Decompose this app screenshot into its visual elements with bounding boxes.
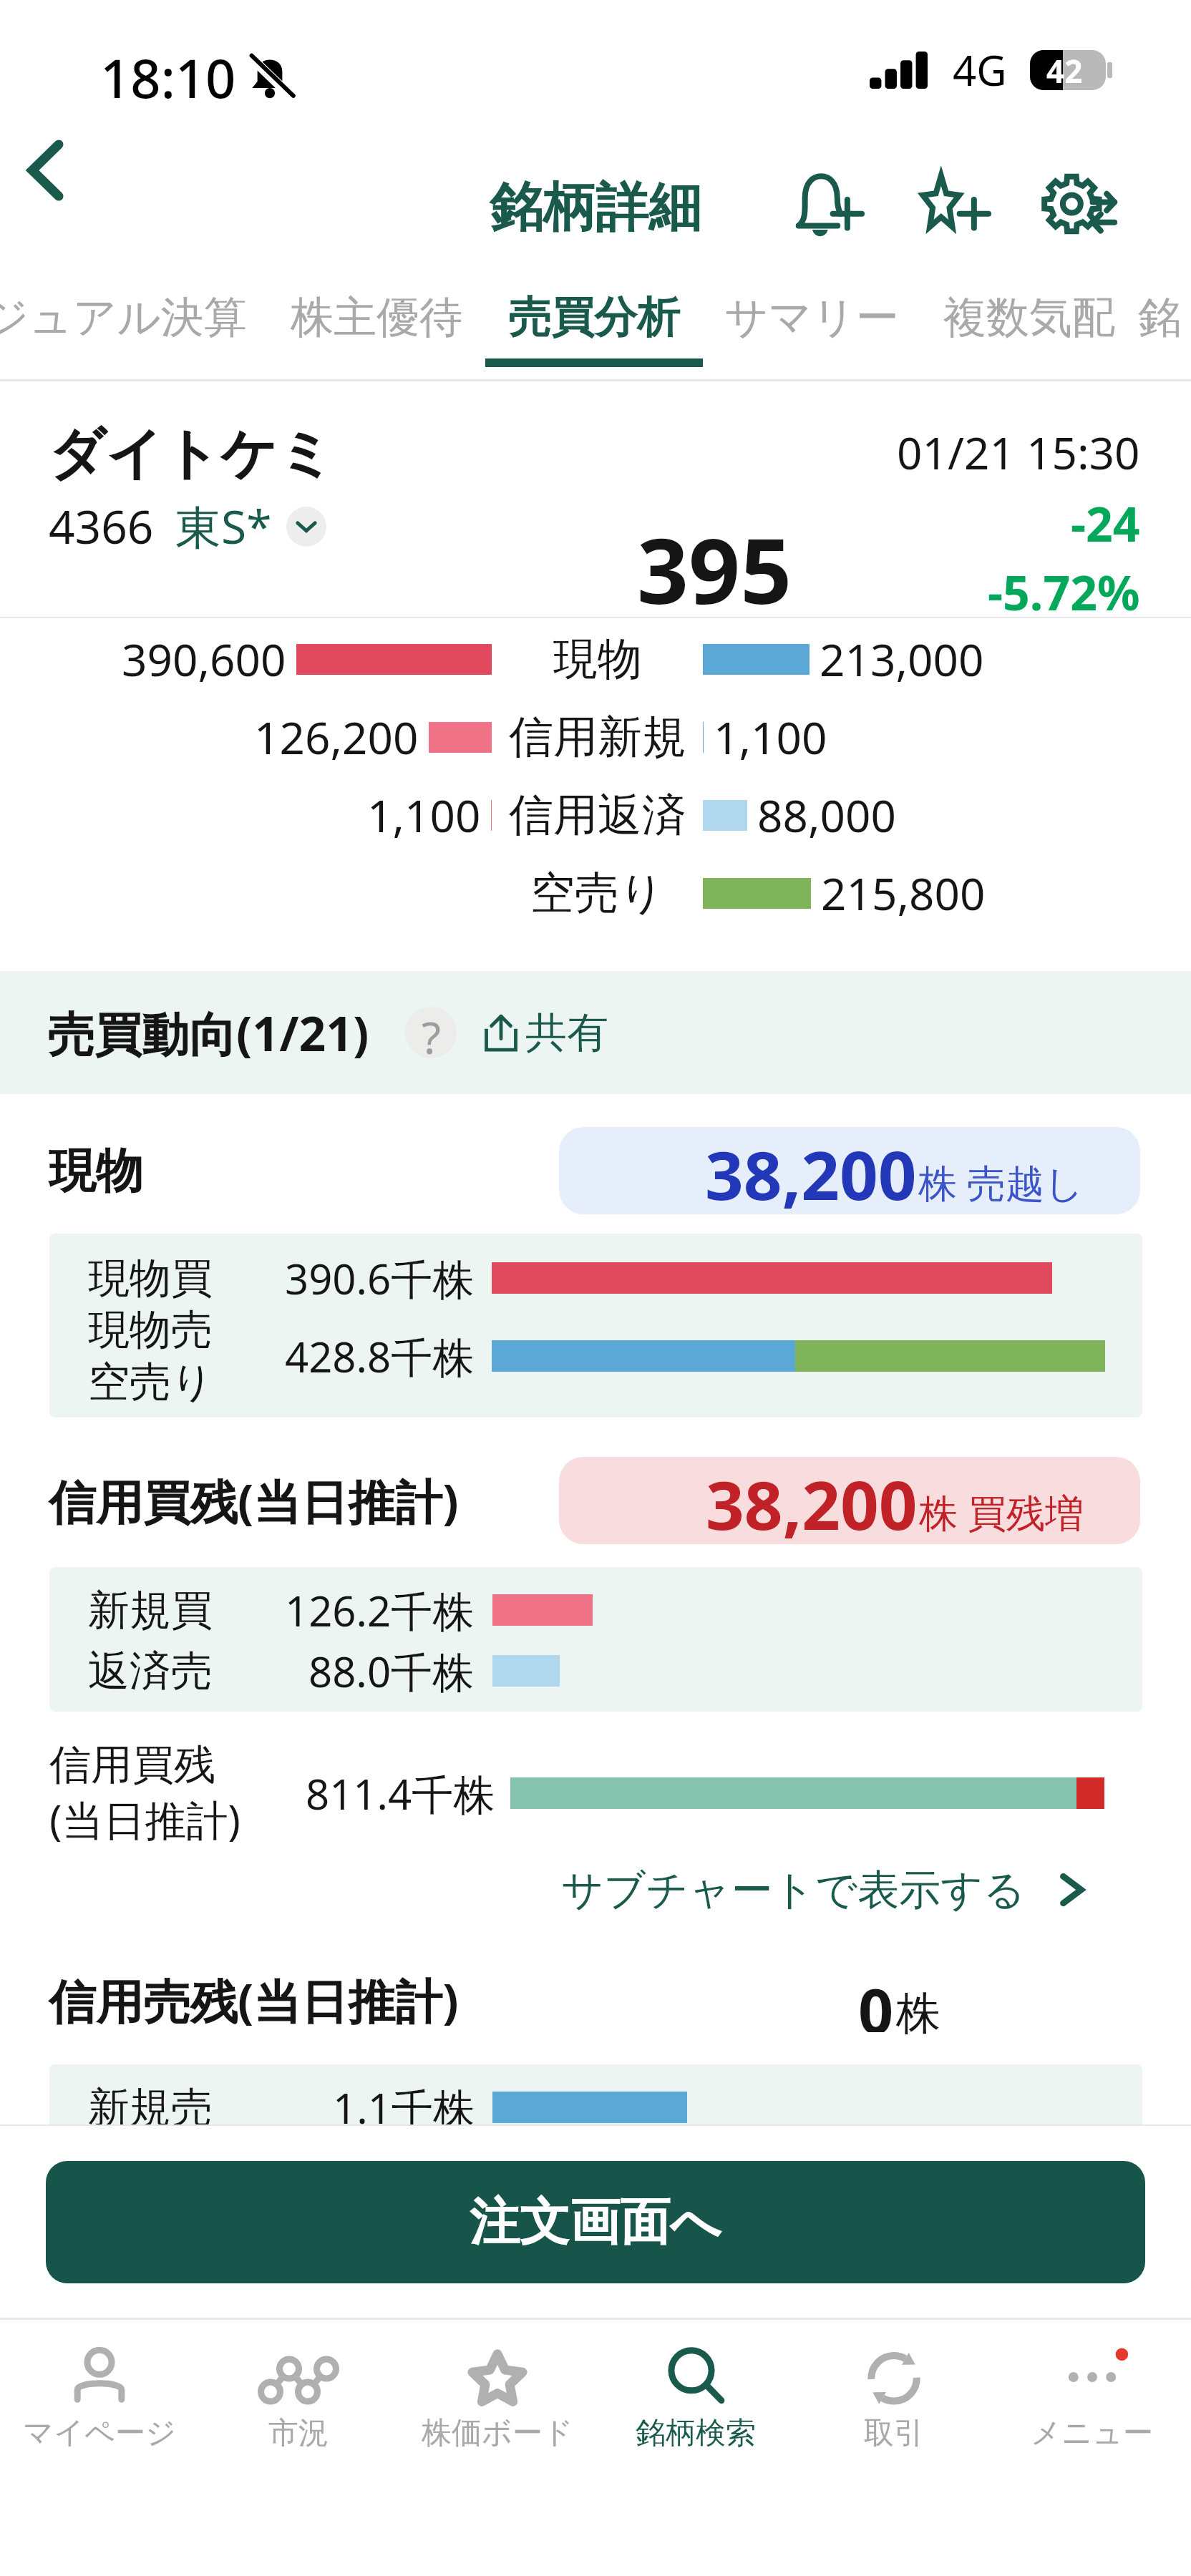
- staticText: 信用売残(当日推計): [49, 1968, 459, 2032]
- staticText: 信用返済: [509, 787, 686, 843]
- staticText: 4G: [953, 42, 1007, 98]
- staticText: 現物買: [88, 1252, 213, 1304]
- button[interactable]: 38,200: [559, 1127, 1140, 1214]
- button[interactable]: Expand market: [286, 507, 326, 547]
- staticText: 1,100: [714, 707, 827, 767]
- button[interactable]: 株価ボード: [398, 2320, 596, 2452]
- staticText: 銘柄詳細: [490, 175, 701, 241]
- staticText: 390.6千株: [285, 1250, 475, 1307]
- staticText: 213,000: [820, 629, 984, 689]
- button[interactable]: ジュアル決算: [0, 272, 268, 358]
- staticText: 売買分析: [505, 291, 684, 345]
- staticText: 126.2千株: [285, 1582, 475, 1639]
- staticText: -24: [1071, 491, 1140, 555]
- button[interactable]: 複数気配: [920, 272, 1138, 358]
- staticText: 返済売: [88, 1645, 213, 1697]
- staticText: 銘柄検索: [636, 2414, 756, 2452]
- button[interactable]: Add to watchlist: [905, 157, 1006, 250]
- staticText: ダイトケミ: [49, 419, 335, 489]
- staticText: 株 売越し: [918, 1156, 1084, 1209]
- staticText: サマリー: [722, 291, 901, 345]
- staticText: 215,800: [821, 863, 986, 923]
- staticText: 4366: [49, 495, 154, 557]
- staticText: 注文画面へ: [470, 2191, 721, 2254]
- staticText: 42: [1046, 49, 1083, 89]
- staticText: 複数気配: [940, 291, 1119, 345]
- staticText: 現物売: [88, 1304, 213, 1356]
- staticText: ジュアル決算: [0, 291, 248, 345]
- staticText: 取引: [864, 2414, 924, 2452]
- staticText: 811.4千株: [306, 1765, 495, 1822]
- staticText: 市況: [268, 2414, 329, 2452]
- button[interactable]: Help: [405, 1007, 457, 1058]
- staticText: 390,600: [122, 629, 286, 689]
- staticText: 空売り: [530, 865, 665, 921]
- staticText: ?: [422, 1007, 441, 1058]
- staticText: 88.0千株: [308, 1643, 475, 1699]
- button[interactable]: 注文画面へ: [46, 2161, 1145, 2283]
- staticText: 空売り: [88, 1356, 214, 1408]
- staticText: -5.72%: [988, 560, 1140, 624]
- button[interactable]: 銘: [1138, 272, 1155, 358]
- staticText: 428.8千株: [285, 1328, 475, 1385]
- button[interactable]: マイページ: [0, 2320, 199, 2452]
- button[interactable]: Add price alert: [778, 157, 880, 250]
- button[interactable]: 売買分析: [485, 272, 703, 367]
- staticText: 株価ボード: [422, 2414, 573, 2452]
- staticText: マイページ: [23, 2414, 176, 2452]
- staticText: サブチャートで表示する: [561, 1864, 1026, 1916]
- staticText: 1,100: [367, 785, 481, 845]
- staticText: 38,200: [706, 1458, 918, 1544]
- button[interactable]: メニュー: [993, 2320, 1191, 2452]
- staticText: 共有: [525, 1007, 608, 1059]
- staticText: 01/21 15:30: [897, 422, 1140, 482]
- staticText: 株: [896, 1986, 940, 2041]
- button[interactable]: サマリー: [703, 272, 920, 358]
- button[interactable]: Settings: [1031, 157, 1132, 250]
- staticText: 銘: [1138, 291, 1155, 345]
- staticText: 1.1千株: [333, 2079, 475, 2135]
- staticText: 現物: [553, 631, 642, 687]
- staticText: 信用買残(当日推計): [49, 1468, 459, 1533]
- staticText: 東S*: [175, 495, 272, 557]
- staticText: 信用買残: [49, 1739, 215, 1791]
- staticText: 新規買: [88, 1584, 213, 1636]
- staticText: (当日推計): [49, 1791, 240, 1848]
- staticText: 売買動向(1/21): [47, 1000, 369, 1065]
- staticText: 株 買残増: [919, 1485, 1084, 1538]
- staticText: 新規売: [88, 2082, 213, 2134]
- staticText: 18:10: [100, 42, 236, 114]
- button[interactable]: 共有: [478, 1007, 608, 1059]
- staticText: 88,000: [757, 785, 896, 845]
- button[interactable]: Back: [6, 131, 84, 210]
- staticText: 126,200: [254, 707, 419, 767]
- staticText: 信用新規: [509, 709, 686, 765]
- staticText: メニュー: [1031, 2414, 1153, 2452]
- button[interactable]: 市況: [199, 2320, 398, 2452]
- button[interactable]: 銘柄検索: [596, 2320, 794, 2452]
- button[interactable]: 株主優待: [268, 272, 485, 358]
- button[interactable]: サブチャートで表示する: [561, 1854, 1092, 1926]
- staticText: 38,200: [705, 1128, 917, 1214]
- button[interactable]: 取引: [794, 2320, 993, 2452]
- staticText: 395: [637, 507, 792, 630]
- staticText: 0: [858, 1968, 894, 2032]
- staticText: 株主優待: [287, 291, 466, 345]
- staticText: 現物: [49, 1141, 143, 1201]
- button[interactable]: 38,200: [559, 1457, 1140, 1544]
